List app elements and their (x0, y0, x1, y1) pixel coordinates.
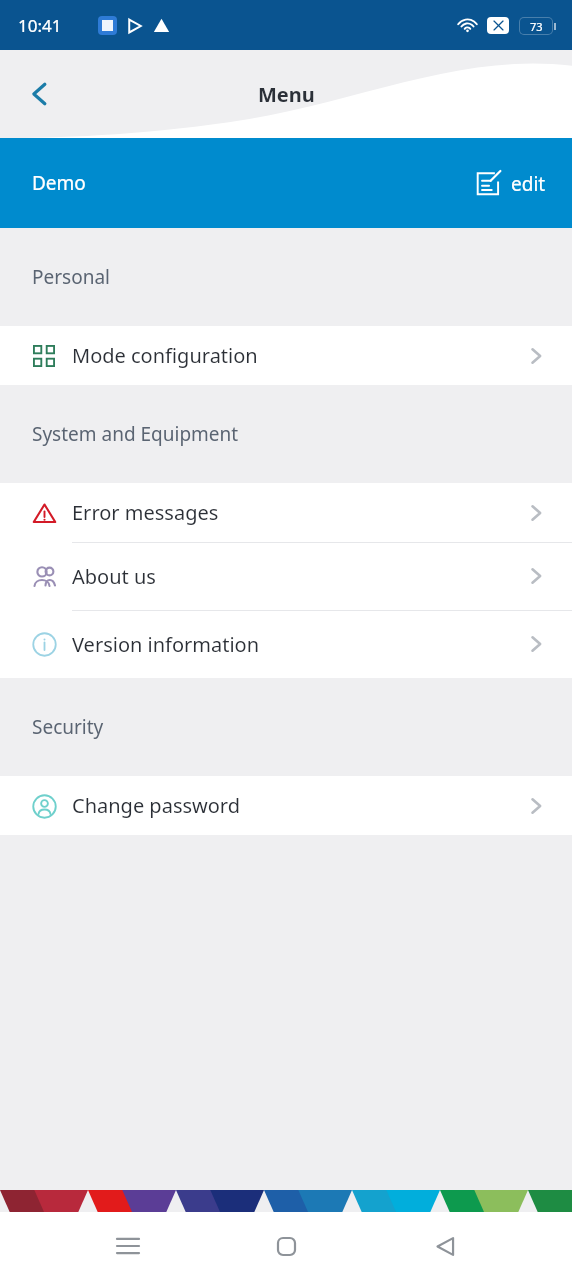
staticText: 73 (530, 19, 543, 34)
staticText: Error messages (72, 499, 219, 526)
button[interactable]: Back (414, 1215, 476, 1277)
button[interactable]: edit (471, 162, 550, 205)
staticText: Mode configuration (72, 342, 258, 369)
button[interactable]: Home (255, 1215, 317, 1277)
staticText: 10:41 (18, 14, 62, 37)
staticText: Personal (32, 264, 110, 290)
staticText: Demo (32, 170, 86, 196)
staticText: System and Equipment (32, 421, 239, 447)
button[interactable]: Recent apps (97, 1215, 159, 1277)
button[interactable]: About us (0, 542, 572, 610)
staticText: Version information (72, 631, 260, 658)
staticText: Security (32, 714, 104, 740)
button[interactable]: Error messages (0, 483, 572, 542)
staticText: Change password (72, 792, 241, 819)
button[interactable]: Version information (0, 610, 572, 678)
button[interactable]: Change password (0, 776, 572, 835)
staticText: About us (72, 563, 156, 590)
button[interactable]: Mode configuration (0, 326, 572, 385)
staticText: edit (511, 171, 546, 197)
staticText: Menu (258, 81, 315, 108)
button[interactable]: Back (10, 64, 70, 124)
